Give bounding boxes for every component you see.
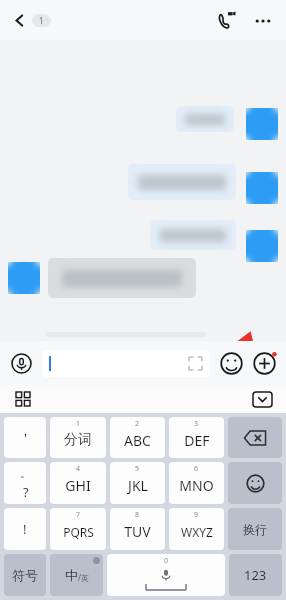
button[interactable]: Avatar [246, 172, 278, 204]
button[interactable] [128, 164, 236, 200]
button[interactable]: 2 [110, 417, 165, 458]
button[interactable]: Space [107, 554, 225, 596]
staticText: 8 [135, 510, 140, 520]
staticText: 7 [76, 510, 81, 520]
button[interactable]: 123 [229, 554, 282, 596]
staticText: 2 [135, 419, 140, 429]
button[interactable]: 8 [110, 508, 165, 550]
staticText: WXYZ [181, 524, 213, 540]
staticText: 分词 [64, 431, 92, 449]
button[interactable]: 。 [4, 462, 46, 504]
staticText: ! [23, 520, 27, 538]
staticText: 9 [194, 510, 199, 520]
button[interactable]: 中 [50, 554, 103, 596]
button[interactable] [42, 350, 210, 377]
staticText: 1 [76, 419, 81, 429]
button[interactable]: Hide keyboard [251, 390, 274, 409]
staticText: 4 [76, 464, 81, 474]
button[interactable]: 7 [50, 508, 106, 550]
staticText: 0 [164, 556, 169, 566]
button[interactable]: 3 [169, 417, 224, 458]
staticText: ABC [124, 431, 151, 450]
staticText: ? [23, 483, 29, 501]
staticText: MNO [179, 476, 214, 495]
staticText: GHI [65, 476, 91, 495]
button[interactable] [176, 106, 234, 132]
staticText: PQRS [63, 524, 94, 540]
button[interactable]: Return [228, 508, 282, 550]
button[interactable]: Keyboard layouts [14, 390, 32, 408]
button[interactable]: Emoji [228, 462, 282, 504]
button[interactable]: Avatar [246, 230, 278, 262]
button[interactable]: Emoji [218, 350, 245, 377]
button[interactable]: Back [8, 7, 55, 34]
button[interactable]: 6 [169, 462, 224, 504]
button[interactable]: 1 [50, 417, 106, 458]
button[interactable]: 5 [110, 462, 165, 504]
staticText: 6 [194, 464, 199, 474]
staticText: DEF [184, 431, 210, 450]
staticText: 符号 [12, 567, 38, 583]
button[interactable]: Video call [213, 7, 240, 34]
staticText: ' [24, 429, 27, 447]
button[interactable]: More options [250, 8, 276, 34]
button[interactable]: 4 [50, 462, 106, 504]
staticText: JKL [128, 476, 148, 495]
staticText: 中 [65, 567, 78, 583]
button[interactable]: Voice input [8, 350, 35, 377]
button[interactable]: Avatar [8, 262, 40, 294]
staticText: 。 [20, 466, 31, 480]
staticText: 5 [135, 464, 140, 474]
staticText: /英 [78, 572, 89, 583]
button[interactable]: Avatar [246, 108, 278, 140]
button[interactable] [150, 220, 236, 250]
staticText: 1 [39, 15, 44, 26]
staticText: 3 [194, 419, 199, 429]
button[interactable]: 符号 [4, 554, 46, 596]
button[interactable]: 9 [169, 508, 224, 550]
staticText: 123 [244, 566, 267, 584]
button[interactable]: Add attachment [251, 350, 278, 377]
button[interactable] [48, 258, 196, 298]
button[interactable]: ' [4, 417, 46, 458]
staticText: 换行 [243, 522, 267, 537]
button[interactable]: ! [4, 508, 46, 550]
staticText: TUV [124, 522, 151, 541]
button[interactable]: Backspace [228, 417, 282, 458]
